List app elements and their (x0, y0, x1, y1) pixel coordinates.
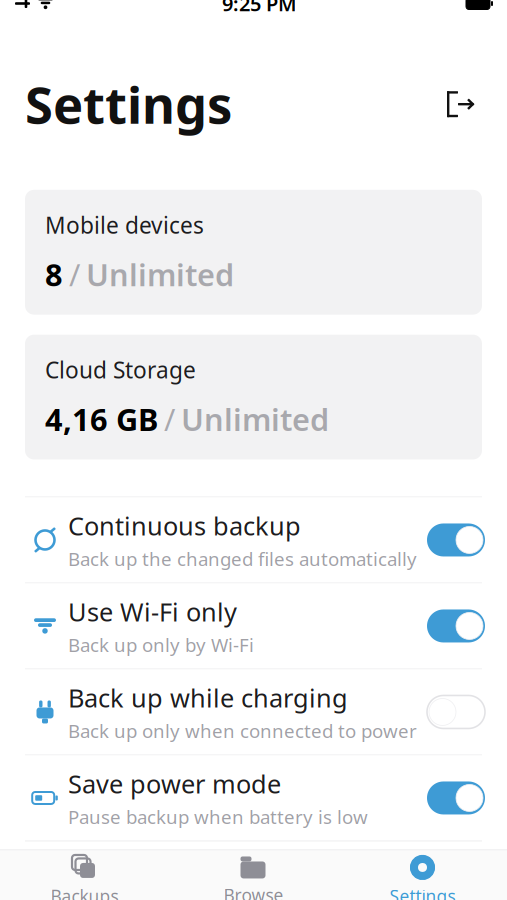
staticText: Browse (223, 883, 283, 900)
staticText: Back up while charging (68, 681, 348, 714)
staticText: Unlimited (181, 399, 329, 439)
staticText: 4,16 GB (45, 399, 158, 439)
staticText: Pause backup when battery is low (68, 804, 368, 829)
staticText: Mobile devices (45, 210, 204, 240)
button[interactable]: Browse (169, 850, 338, 900)
button[interactable]: Continuous backup (0, 497, 507, 582)
button[interactable]: Use Wi-Fi only (0, 583, 507, 668)
staticText: Settings (389, 884, 455, 900)
button[interactable]: Log out (438, 82, 482, 126)
button[interactable]: Save power mode (0, 755, 507, 840)
staticText: Save power mode (68, 767, 281, 800)
staticText: 9:25 PM (222, 0, 297, 17)
staticText: Back up the changed files automatically (68, 546, 417, 571)
staticText: Unlimited (86, 254, 234, 295)
staticText: Back up only by Wi-Fi (68, 632, 254, 657)
button[interactable]: Settings (338, 850, 507, 900)
button[interactable]: Back up while charging (0, 669, 507, 754)
staticText: / (164, 399, 175, 439)
button[interactable]: Backups (0, 850, 169, 900)
staticText: Use Wi-Fi only (68, 595, 237, 628)
staticText: Backups (50, 884, 118, 900)
staticText: Continuous backup (68, 509, 301, 542)
staticText: / (69, 254, 80, 295)
staticText: Cloud Storage (45, 355, 196, 385)
staticText: Settings (25, 70, 232, 138)
staticText: Back up only when connected to power (68, 718, 417, 743)
staticText: 8 (45, 254, 63, 295)
